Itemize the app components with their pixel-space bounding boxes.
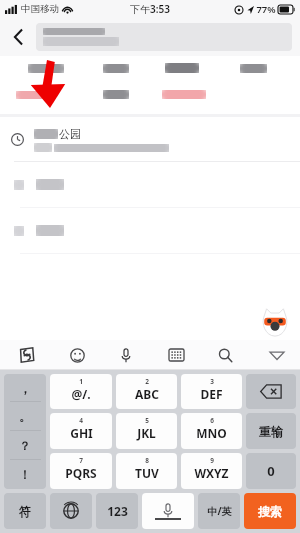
- staticText: 7: [79, 456, 83, 465]
- button[interactable]: 2: [116, 374, 177, 409]
- button[interactable]: 9: [181, 453, 242, 489]
- staticText: 搜索: [258, 504, 282, 519]
- staticText: ABC: [135, 386, 159, 402]
- button[interactable]: 搜索: [244, 493, 296, 529]
- staticText: WXYZ: [194, 465, 229, 481]
- button[interactable]: 中/英: [198, 493, 240, 529]
- button[interactable]: ？: [4, 431, 46, 460]
- button[interactable]: [0, 162, 300, 207]
- button[interactable]: Keyboard: [161, 340, 191, 370]
- staticText: 中国移动: [21, 3, 59, 15]
- staticText: 1: [79, 377, 83, 386]
- staticText: 3: [210, 377, 214, 386]
- staticText: 符: [19, 504, 31, 519]
- button[interactable]: Sogou input: [12, 340, 42, 370]
- staticText: 2: [145, 377, 149, 386]
- staticText: ？: [19, 438, 31, 453]
- staticText: 123: [107, 503, 128, 519]
- button[interactable]: 5: [116, 413, 177, 449]
- button[interactable]: 3: [181, 374, 242, 409]
- button[interactable]: ！: [4, 460, 46, 489]
- button[interactable]: 123: [96, 493, 138, 529]
- button[interactable]: Emoji: [62, 340, 92, 370]
- staticText: 8: [145, 456, 149, 465]
- staticText: @/.: [71, 386, 91, 402]
- button[interactable]: 1: [50, 374, 112, 409]
- button[interactable]: 0: [246, 453, 296, 489]
- button[interactable]: Search: [210, 340, 240, 370]
- button[interactable]: 符: [4, 493, 46, 529]
- button[interactable]: 8: [116, 453, 177, 489]
- staticText: ！: [19, 467, 31, 482]
- button[interactable]: Back: [0, 18, 36, 56]
- staticText: 6: [210, 416, 214, 425]
- button[interactable]: ，: [4, 374, 46, 402]
- button[interactable]: Delete: [246, 374, 296, 409]
- staticText: 9: [210, 456, 214, 465]
- button[interactable]: 公园: [0, 117, 300, 161]
- staticText: 。: [19, 409, 31, 424]
- staticText: MNO: [196, 425, 227, 441]
- staticText: 77%: [256, 3, 276, 16]
- button[interactable]: 重输: [246, 413, 296, 449]
- button[interactable]: 4: [50, 413, 112, 449]
- button[interactable]: Hide keyboard: [254, 340, 300, 370]
- button[interactable]: 。: [4, 402, 46, 431]
- staticText: GHI: [70, 425, 93, 441]
- button[interactable]: 7: [50, 453, 112, 489]
- staticText: 中/英: [207, 504, 232, 518]
- staticText: 下午3:53: [130, 2, 170, 16]
- staticText: TUV: [135, 465, 159, 481]
- staticText: 0: [267, 462, 275, 480]
- staticText: 公园: [59, 127, 81, 141]
- button[interactable]: Space: [142, 493, 194, 529]
- staticText: DEF: [200, 386, 223, 402]
- button[interactable]: Voice input: [111, 340, 141, 370]
- staticText: JKL: [137, 425, 156, 441]
- staticText: 重输: [259, 424, 283, 439]
- staticText: 4: [79, 416, 83, 425]
- staticText: 5: [145, 416, 149, 425]
- button[interactable]: Language: [50, 493, 92, 529]
- staticText: PQRS: [65, 465, 97, 481]
- staticText: ，: [19, 381, 31, 396]
- button[interactable]: 6: [181, 413, 242, 449]
- button[interactable]: [36, 23, 292, 51]
- button[interactable]: [0, 208, 300, 253]
